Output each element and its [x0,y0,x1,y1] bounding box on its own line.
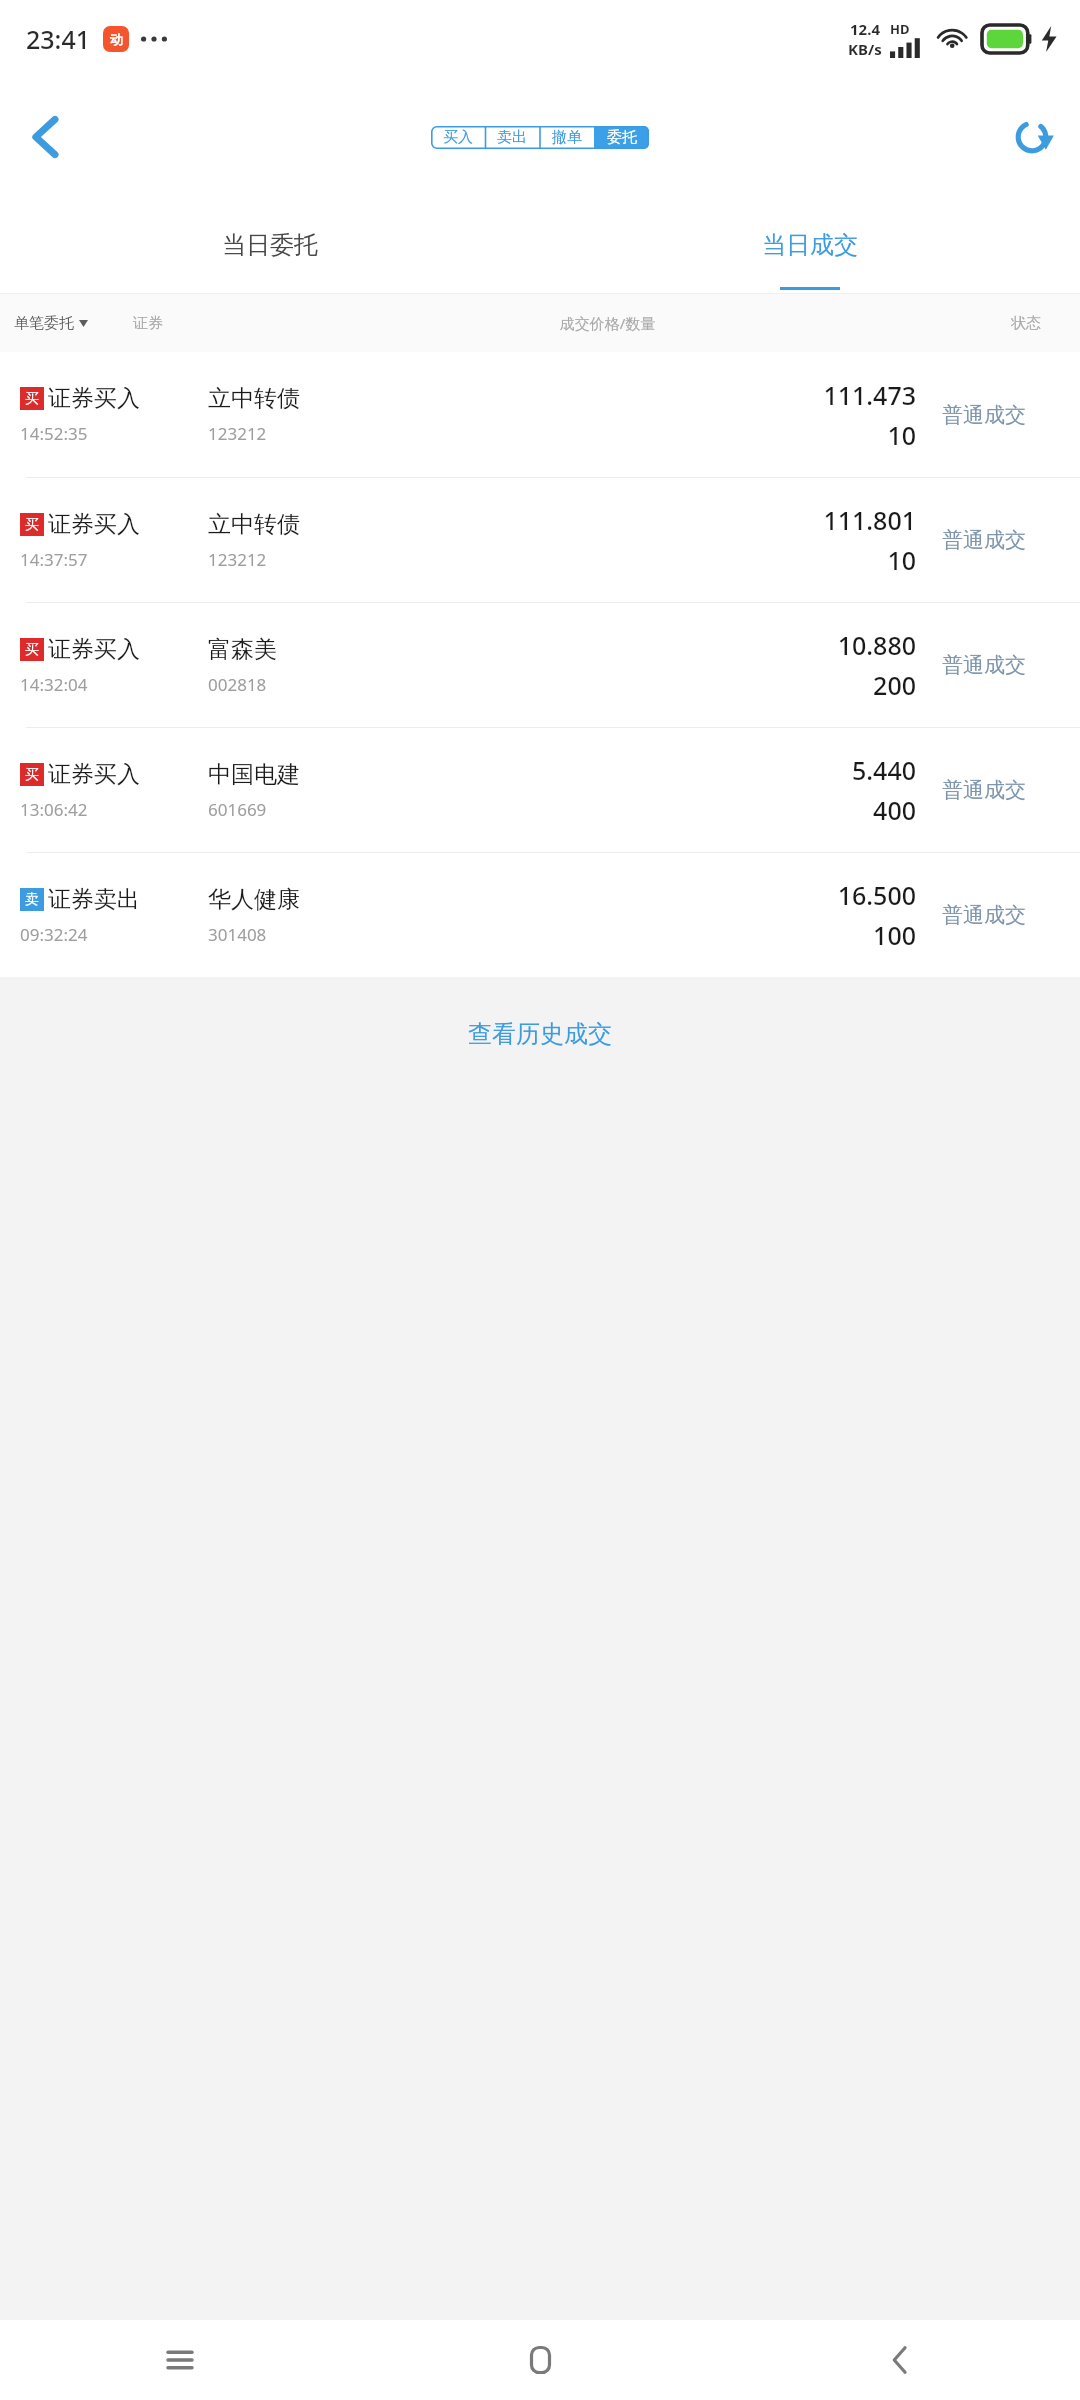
staticText: 普通成交 [942,527,1054,553]
staticText: 证券卖出 [48,885,140,914]
staticText: 14:37:57 [20,548,88,571]
button[interactable]: 最近任务 [0,2320,360,2400]
staticText: 证券 [133,314,243,333]
button[interactable]: 买 [0,602,1080,727]
staticText: 查看历史成交 [468,1019,612,1049]
button[interactable]: 当日成交 [540,196,1080,294]
button[interactable]: 卖 [0,852,1080,977]
staticText: 100 [873,918,916,952]
staticText: 12.4 [850,19,880,39]
button[interactable]: 单笔委托 [14,314,133,333]
button[interactable]: 委托 [594,126,649,149]
staticText: 111.473 [823,378,916,412]
staticText: 证券买入 [48,760,140,789]
staticText: 证券买入 [48,384,140,413]
button[interactable]: 刷新 [994,99,1070,175]
staticText: 23:41 [26,22,91,56]
staticText: 卖 [25,891,39,909]
staticText: 13:06:42 [20,798,88,821]
button[interactable]: 主屏幕 [360,2320,720,2400]
staticText: 当日委托 [222,230,318,260]
staticText: 09:32:24 [20,923,88,946]
staticText: 买入 [443,128,473,147]
staticText: 123212 [208,422,267,445]
staticText: 华人健康 [208,885,300,914]
staticText: 002818 [208,673,267,696]
staticText: 证券买入 [48,510,140,539]
staticText: 证券买入 [48,635,140,664]
staticText: 买 [25,766,39,784]
staticText: 普通成交 [942,652,1054,678]
staticText: 10 [887,418,916,452]
staticText: 14:52:35 [20,422,88,445]
staticText: 14:32:04 [20,673,88,696]
staticText: 400 [873,793,916,827]
staticText: 普通成交 [942,402,1054,428]
staticText: 动 [110,31,123,47]
staticText: 123212 [208,548,267,571]
staticText: 卖出 [497,128,527,147]
staticText: 立中转债 [208,384,300,413]
staticText: 16.500 [837,878,916,912]
staticText: 当日成交 [762,230,858,260]
staticText: 单笔委托 [14,314,74,333]
button[interactable]: 当日委托 [0,196,540,294]
staticText: 10.880 [837,628,916,662]
staticText: KB/s [848,39,882,59]
staticText: 撤单 [552,128,582,147]
staticText: 委托 [607,128,637,147]
staticText: HD [890,20,910,38]
staticText: 5.440 [851,753,916,787]
staticText: 301408 [208,923,267,946]
staticText: 富森美 [208,635,277,664]
staticText: 立中转债 [208,510,300,539]
staticText: 10 [887,543,916,577]
staticText: 普通成交 [942,777,1054,803]
button[interactable]: 撤单 [539,126,594,149]
button[interactable]: 买入 [431,126,485,149]
staticText: 111.801 [823,503,916,537]
button[interactable]: 卖出 [485,126,539,149]
staticText: 普通成交 [942,902,1054,928]
button[interactable]: 买 [0,352,1080,477]
staticText: 买 [25,390,39,408]
staticText: 601669 [208,798,267,821]
button[interactable]: 返回 [8,99,84,175]
staticText: 买 [25,641,39,659]
button[interactable]: 买 [0,477,1080,602]
button[interactable]: 查看历史成交 [440,1007,640,1061]
staticText: 中国电建 [208,760,300,789]
staticText: 买 [25,516,39,534]
button[interactable]: 返回 [720,2320,1080,2400]
staticText: 状态 [972,314,1080,333]
staticText: 成交价格/数量 [243,313,972,333]
button[interactable]: 买 [0,727,1080,852]
staticText: 200 [873,668,916,702]
